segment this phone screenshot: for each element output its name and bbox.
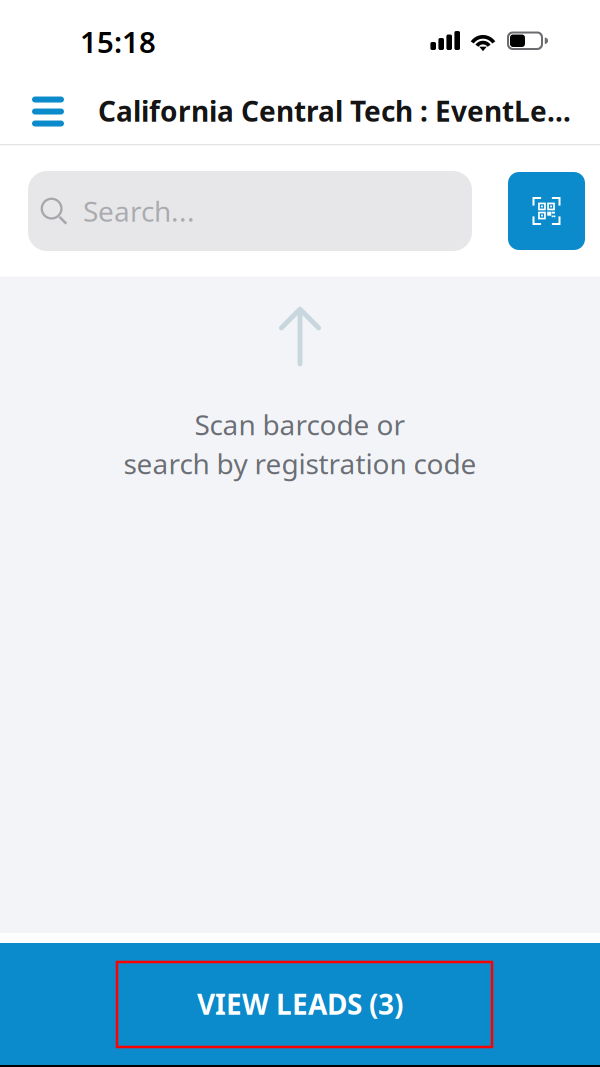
staticText: Search... [83, 192, 195, 230]
staticText: Scan barcode or [194, 406, 405, 443]
staticText: search by registration code [123, 445, 476, 482]
button[interactable]: Menu [0, 74, 66, 144]
staticText: VIEW LEADS (3) [197, 985, 403, 1023]
button[interactable]: Scan QR code [508, 172, 585, 250]
button[interactable]: VIEW LEADS (3) [0, 943, 600, 1065]
staticText: California Central Tech : EventLeaf Co..… [98, 92, 575, 130]
staticText: 15:18 [80, 22, 156, 61]
